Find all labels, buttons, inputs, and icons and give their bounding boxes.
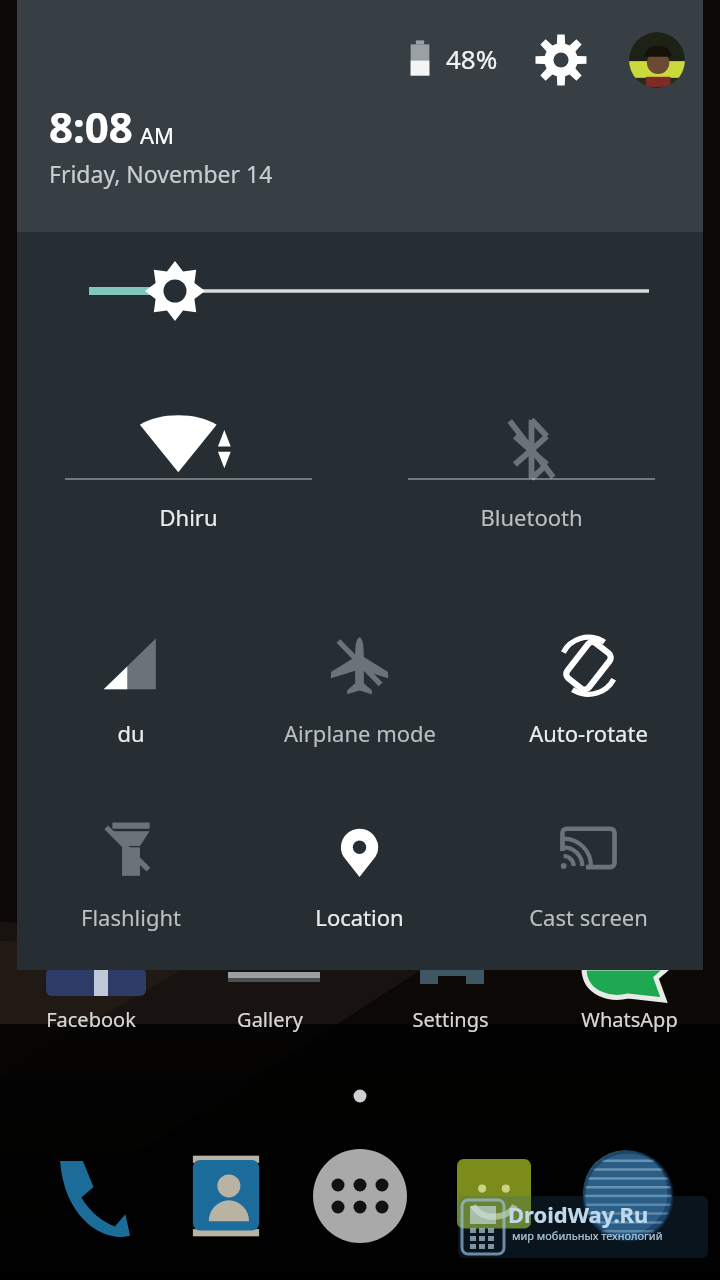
staticText: DroidWay.Ru bbox=[508, 1199, 649, 1229]
staticText: Cast screen bbox=[529, 902, 648, 932]
staticText: Bluetooth bbox=[480, 502, 583, 532]
staticText: 8:08 bbox=[49, 98, 133, 155]
button[interactable]: Settings bbox=[533, 32, 589, 88]
button[interactable]: Auto-rotate bbox=[474, 624, 703, 760]
staticText: Flashlight bbox=[81, 902, 181, 932]
button[interactable]: Brightness bbox=[17, 232, 703, 350]
staticText: Auto-rotate bbox=[529, 718, 648, 748]
button[interactable]: Bluetooth bbox=[360, 402, 703, 562]
button[interactable]: Location bbox=[245, 808, 474, 944]
button[interactable]: du bbox=[17, 624, 245, 760]
staticText: Settings bbox=[412, 1006, 489, 1033]
button[interactable]: User profile bbox=[629, 32, 685, 88]
staticText: Facebook bbox=[46, 1006, 136, 1033]
staticText: Gallery bbox=[237, 1006, 303, 1033]
staticText: Friday, November 14 bbox=[49, 158, 273, 189]
staticText: 48% bbox=[446, 41, 498, 76]
staticText: Airplane mode bbox=[284, 718, 436, 748]
staticText: Dhiru bbox=[159, 502, 218, 532]
staticText: du bbox=[117, 718, 145, 748]
button[interactable]: Dhiru bbox=[17, 402, 360, 562]
staticText: Location bbox=[315, 902, 404, 932]
button[interactable]: Cast screen bbox=[474, 808, 703, 944]
other: Battery 48 percent bbox=[402, 36, 438, 80]
staticText: мир мобильных технологий bbox=[512, 1228, 663, 1243]
staticText: WhatsApp bbox=[581, 1006, 678, 1033]
button[interactable]: Airplane mode bbox=[245, 624, 474, 760]
staticText: AM bbox=[140, 120, 175, 150]
button[interactable]: Flashlight bbox=[17, 808, 245, 944]
